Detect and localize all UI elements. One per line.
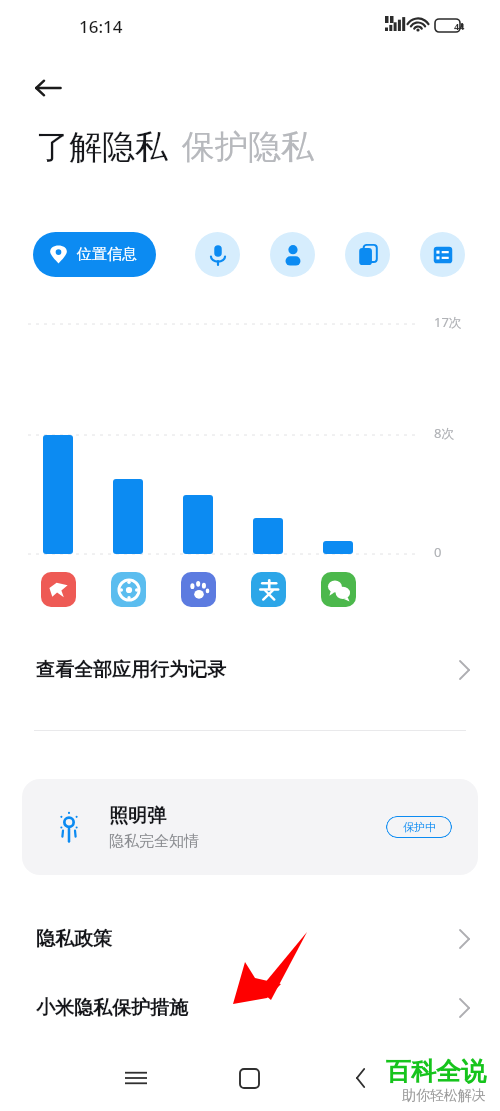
staticText: 保护中 [403, 820, 436, 834]
staticText: 查看全部应用行为记录 [36, 658, 226, 682]
button[interactable]: App 4 [251, 572, 286, 607]
button[interactable]: 查看全部应用行为记录 [0, 640, 500, 700]
staticText: 0 [434, 543, 442, 561]
button[interactable]: 小米隐私保护措施 [0, 979, 500, 1037]
button[interactable]: Recents [110, 1052, 162, 1104]
staticText: 助你轻松解决 [402, 1087, 486, 1105]
button[interactable]: Home [223, 1052, 275, 1104]
staticText: 8次 [434, 424, 455, 442]
button[interactable]: App 1 [41, 572, 76, 607]
button[interactable]: Back [22, 62, 74, 114]
staticText: 百科全说 [386, 1056, 486, 1087]
button[interactable]: 位置信息 [33, 232, 156, 277]
button[interactable]: Contacts [270, 232, 315, 277]
staticText: 照明弹 [109, 804, 166, 828]
button[interactable]: Microphone [195, 232, 240, 277]
button[interactable]: App 5 [321, 572, 356, 607]
staticText: 位置信息 [77, 245, 137, 264]
staticText: 小米隐私保护措施 [36, 996, 188, 1020]
button[interactable]: Back [339, 1055, 385, 1101]
button[interactable]: 保护隐私 [182, 126, 314, 168]
button[interactable]: 隐私政策 [0, 910, 500, 968]
button[interactable]: App 3 [181, 572, 216, 607]
button[interactable]: 了解隐私 [36, 126, 168, 168]
staticText: 隐私完全知情 [109, 832, 199, 851]
button[interactable]: 照明弹 [22, 779, 478, 875]
staticText: 16:14 [79, 15, 123, 38]
button[interactable]: Storage [345, 232, 390, 277]
button[interactable]: Records [420, 232, 465, 277]
staticText: 隐私政策 [36, 927, 112, 951]
button[interactable]: App 2 [111, 572, 146, 607]
staticText: 44 [454, 20, 465, 32]
staticText: 17次 [434, 313, 462, 331]
